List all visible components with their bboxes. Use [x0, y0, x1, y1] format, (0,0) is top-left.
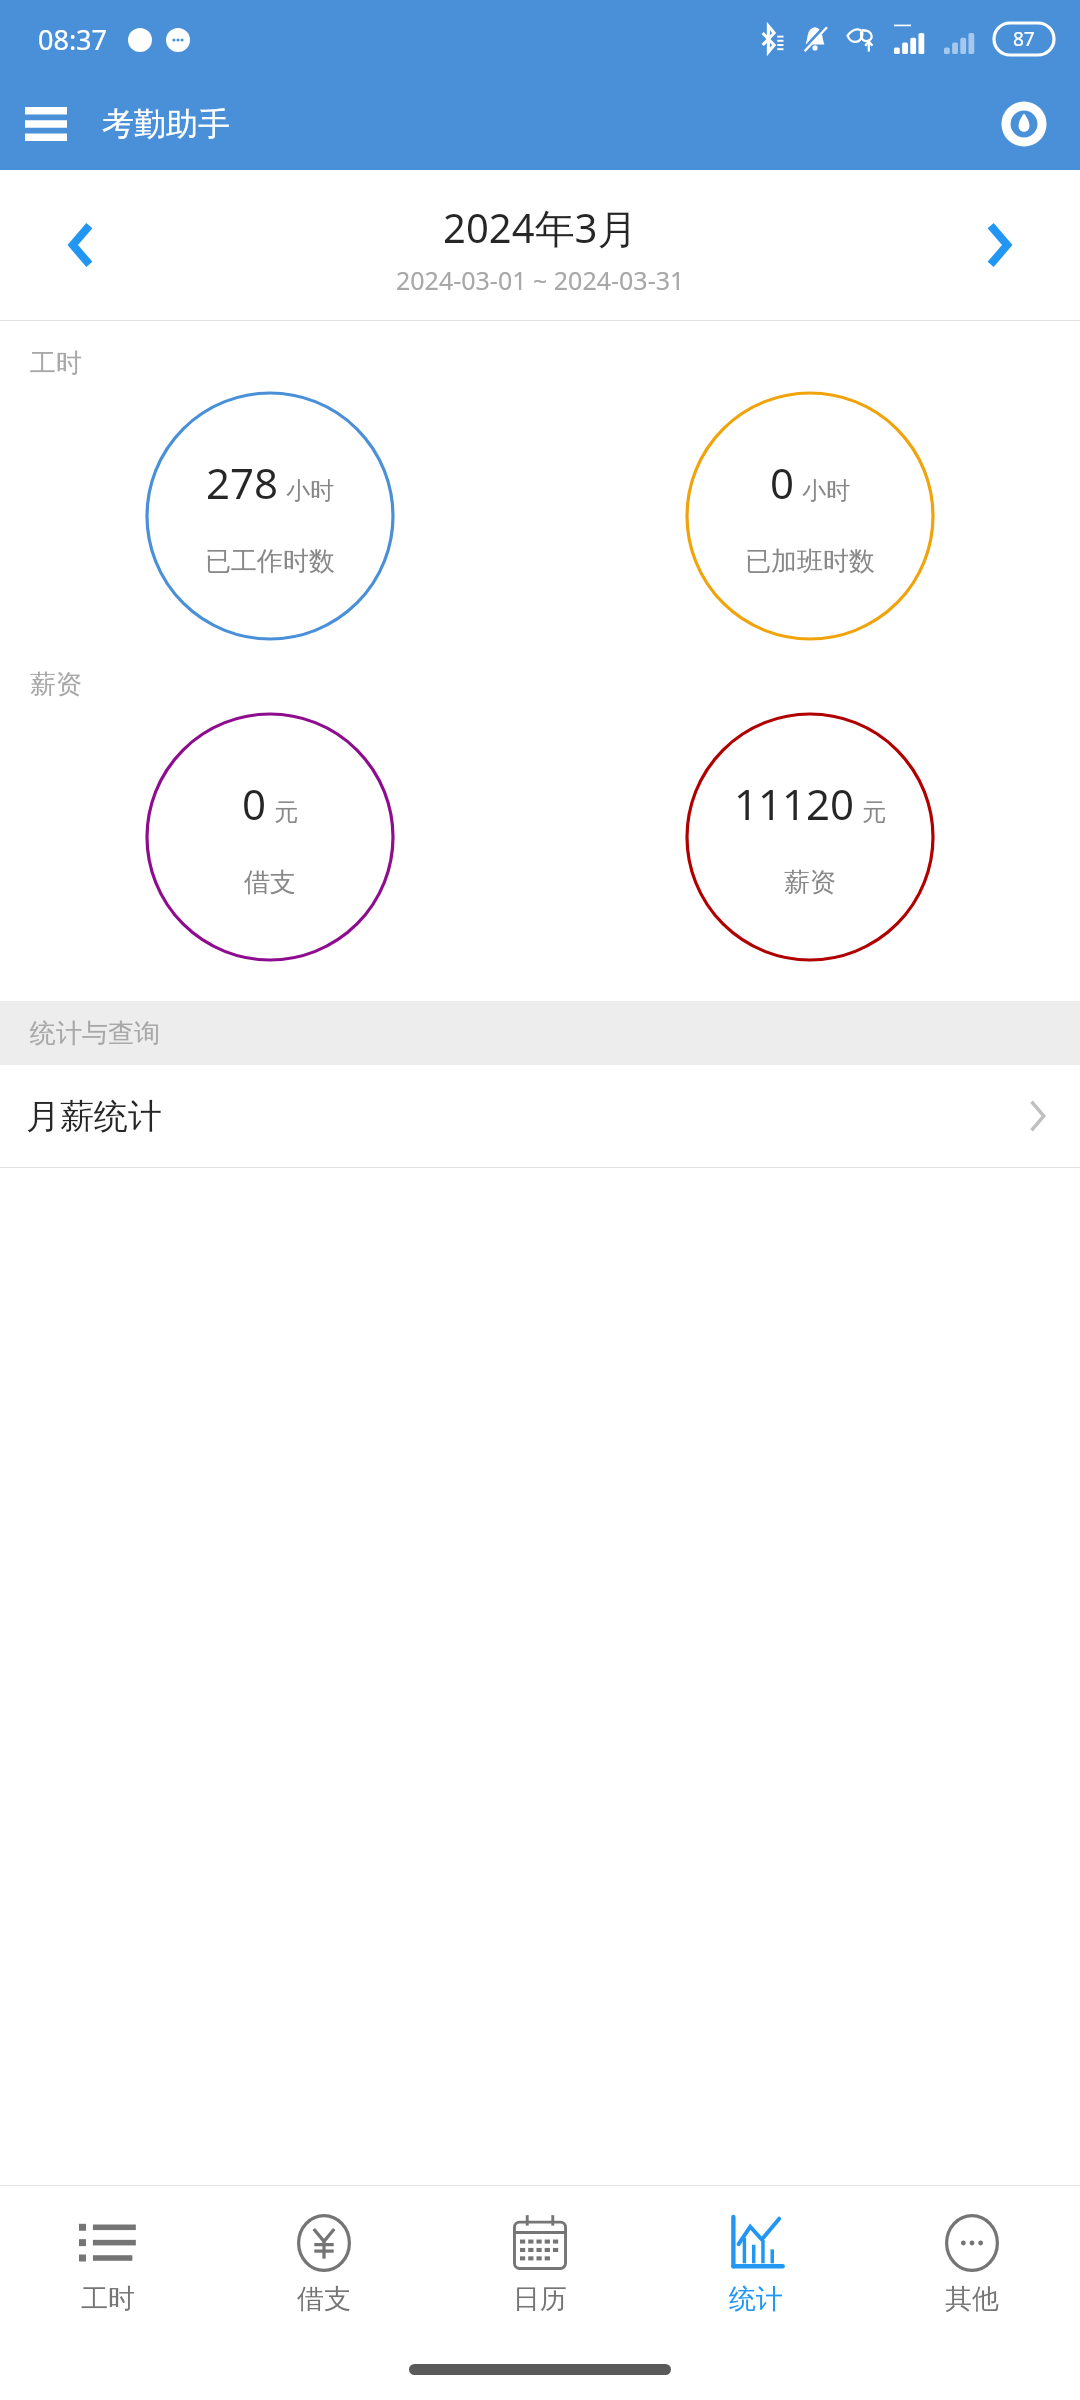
staticText: 月薪统计 [26, 1095, 162, 1138]
staticText: 元 [274, 797, 298, 827]
staticText: 0 [770, 454, 795, 511]
staticText: 已加班时数 [745, 545, 875, 578]
staticText: 薪资 [30, 668, 82, 701]
staticText: 2024年3月 [443, 200, 638, 255]
button[interactable]: 其他 [864, 2186, 1080, 2338]
button[interactable]: 11120 [685, 712, 935, 962]
staticText: 统计与查询 [30, 1017, 160, 1050]
staticText: 日历 [513, 2282, 567, 2316]
staticText: 考勤助手 [102, 104, 230, 144]
button[interactable]: Next month [962, 209, 1034, 281]
button[interactable]: 借支 [216, 2186, 432, 2338]
staticText: 0 [242, 775, 267, 832]
staticText: 元 [862, 797, 886, 827]
staticText: 统计 [729, 2282, 783, 2316]
button[interactable]: 278 [145, 391, 395, 641]
staticText: 08:37 [38, 21, 108, 58]
staticText: 87 [1013, 26, 1035, 52]
staticText: 其他 [945, 2282, 999, 2316]
staticText: 小时 [286, 476, 334, 506]
staticText: 小时 [802, 476, 850, 506]
button[interactable]: Menu [16, 94, 76, 154]
staticText: 工时 [81, 2282, 135, 2316]
staticText: 2024-03-01 ~ 2024-03-31 [396, 263, 685, 297]
button[interactable]: 0 [685, 391, 935, 641]
staticText: 278 [206, 454, 279, 511]
button[interactable]: Previous month [46, 209, 118, 281]
button[interactable]: 月薪统计 [0, 1065, 1080, 1167]
staticText: 借支 [297, 2282, 351, 2316]
button[interactable]: 日历 [432, 2186, 648, 2338]
staticText: 已工作时数 [205, 545, 335, 578]
button[interactable]: Settings [994, 94, 1054, 154]
button[interactable]: 0 [145, 712, 395, 962]
staticText: 借支 [244, 866, 296, 899]
staticText: 薪资 [784, 866, 836, 899]
staticText: 11120 [734, 775, 855, 832]
button[interactable]: 工时 [0, 2186, 216, 2338]
staticText: 工时 [30, 347, 82, 380]
button[interactable]: 统计 [648, 2186, 864, 2338]
